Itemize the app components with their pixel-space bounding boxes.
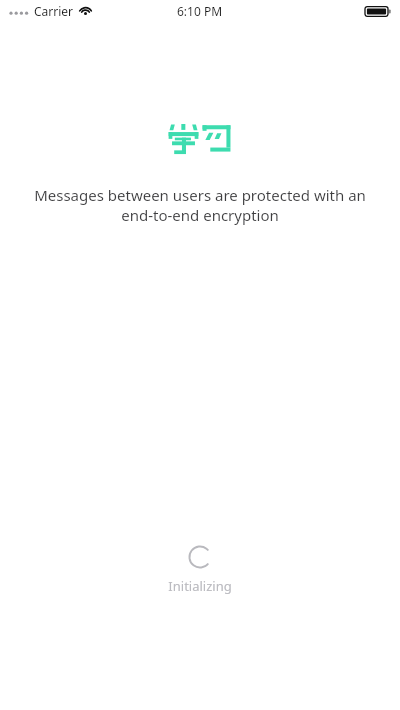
staticText: Initializing (168, 577, 232, 595)
staticText: 6:10 PM (177, 3, 223, 19)
other: Loading (188, 545, 212, 569)
staticText: Carrier (34, 3, 74, 19)
button[interactable]: Loading (0, 545, 400, 595)
staticText: Messages between users are protected wit… (34, 185, 366, 225)
